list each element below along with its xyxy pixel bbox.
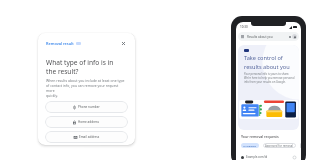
staticText: Take control of results about you: [244, 54, 290, 71]
staticText: Removal result: [46, 41, 74, 46]
button[interactable]: All requests: [241, 143, 259, 148]
button[interactable]: Approved for removal: [263, 143, 296, 148]
button[interactable]: Phone number: [45, 101, 128, 113]
staticText: Phone number: [78, 105, 100, 109]
staticText: Example.com/id: [246, 155, 268, 159]
staticText: All requests: [243, 144, 257, 147]
staticText: Your removal requests: [241, 134, 279, 139]
button[interactable]: Email address: [45, 131, 128, 143]
staticText: Results about you: [247, 35, 273, 39]
staticText: Approved for removal: [265, 144, 294, 148]
staticText: Home address: [78, 120, 100, 124]
button[interactable]: Close: [120, 40, 127, 47]
staticText: Your personal info is yours to share. We…: [244, 72, 296, 84]
staticText: What type of info is in the result?: [46, 58, 114, 76]
button[interactable]: Results about you: [238, 32, 299, 41]
staticText: Email address: [79, 135, 100, 139]
button[interactable]: Account: [292, 34, 297, 39]
staticText: When results about you include at least …: [46, 78, 127, 98]
button[interactable]: Example.com/id: [238, 151, 299, 160]
staticText: 10:30: [240, 25, 248, 29]
button[interactable]: Home address: [45, 116, 128, 128]
button[interactable]: [300, 143, 301, 148]
button[interactable]: Clear: [287, 34, 292, 39]
